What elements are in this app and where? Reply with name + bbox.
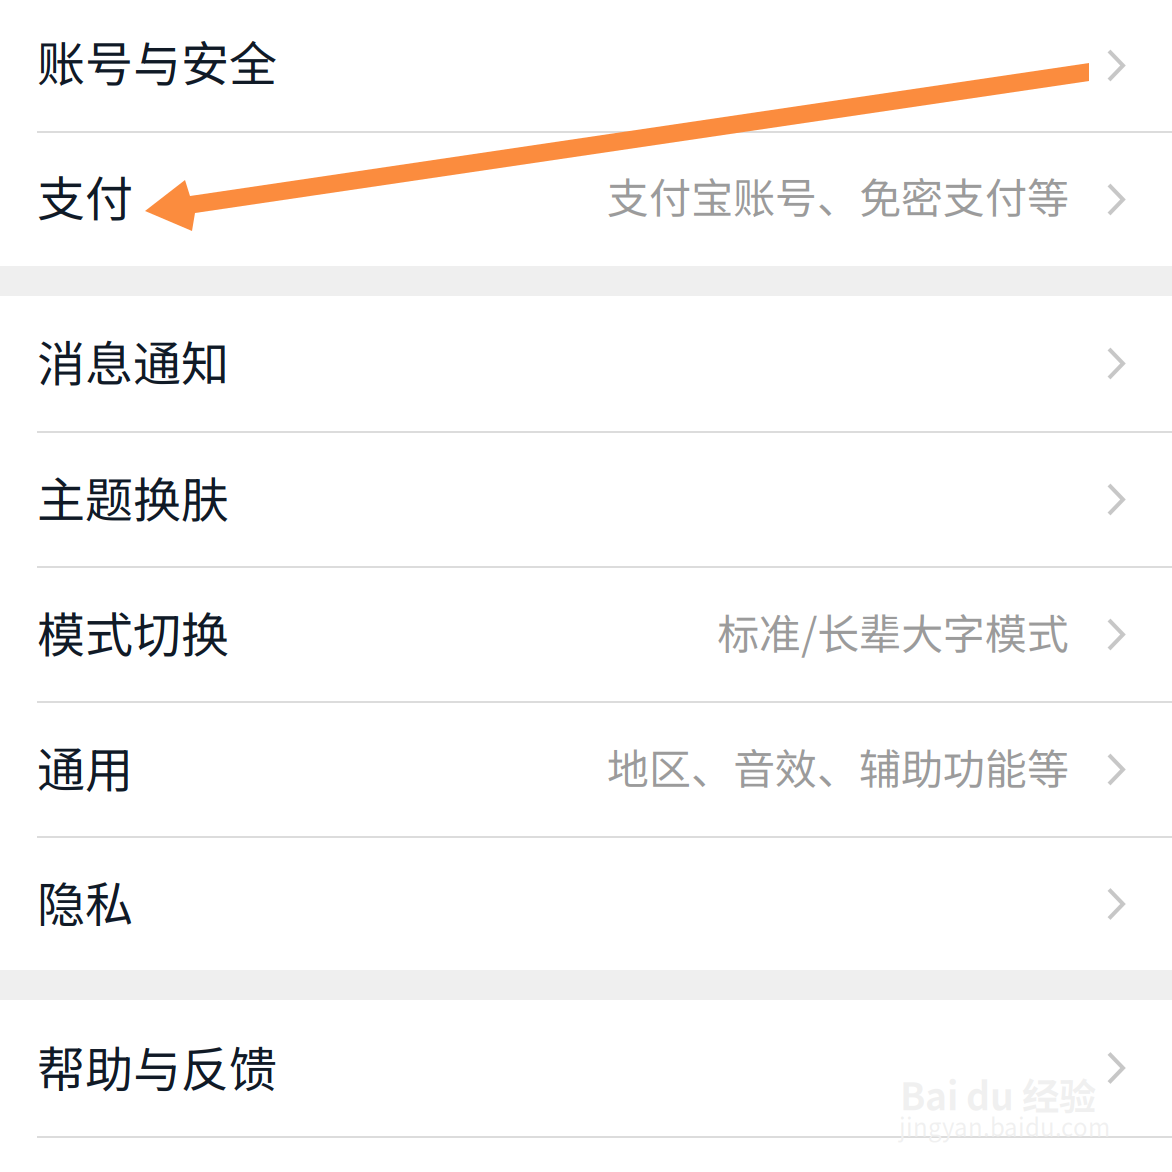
- button[interactable]: 模式切换: [0, 568, 1172, 703]
- staticText: 帮助与反馈: [37, 1031, 277, 1101]
- staticText: 消息通知: [37, 326, 229, 395]
- staticText: 账号与安全: [37, 26, 277, 95]
- button[interactable]: 隐私: [0, 838, 1172, 970]
- staticText: 隐私: [37, 866, 133, 936]
- button[interactable]: 通用: [0, 703, 1172, 838]
- staticText: 模式切换: [37, 597, 229, 666]
- staticText: 主题换肤: [37, 462, 229, 531]
- staticText: Bai du 经验: [900, 1067, 1096, 1121]
- staticText: 标准/长辈大字模式: [717, 601, 1069, 662]
- staticText: jingyan.baidu.com: [899, 1109, 1110, 1143]
- button[interactable]: 主题换肤: [0, 433, 1172, 568]
- staticText: 通用: [37, 732, 133, 801]
- button[interactable]: 支付: [0, 133, 1172, 266]
- button[interactable]: 帮助与反馈: [0, 1000, 1172, 1138]
- button[interactable]: 消息通知: [0, 296, 1172, 433]
- button[interactable]: 账号与安全: [0, 0, 1172, 133]
- staticText: 支付: [37, 161, 133, 230]
- staticText: 支付宝账号、免密支付等: [607, 165, 1069, 226]
- staticText: 地区、音效、辅助功能等: [607, 736, 1069, 797]
